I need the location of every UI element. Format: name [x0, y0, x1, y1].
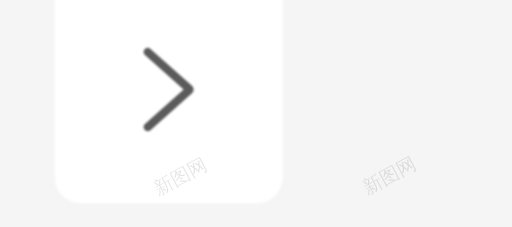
- button[interactable]: Next: [0, 0, 512, 227]
- staticText: 新图网: [150, 153, 211, 201]
- staticText: 新图网: [359, 152, 420, 200]
